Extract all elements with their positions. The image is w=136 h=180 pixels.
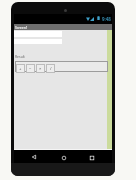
button[interactable]: − — [26, 64, 35, 73]
staticText: Result — [15, 54, 25, 59]
staticText: 9:48 — [102, 16, 111, 22]
button[interactable]: × — [36, 64, 45, 73]
button[interactable]: Recents — [87, 153, 97, 163]
staticText: Screen1 — [15, 25, 28, 30]
staticText: − — [29, 66, 32, 72]
staticText: × — [39, 66, 42, 72]
staticText: / — [50, 66, 52, 72]
button[interactable]: Home — [59, 153, 69, 163]
staticText: + — [19, 66, 22, 72]
button[interactable]: / — [46, 64, 55, 73]
button[interactable]: Back — [29, 152, 39, 162]
button[interactable]: + — [16, 64, 25, 73]
